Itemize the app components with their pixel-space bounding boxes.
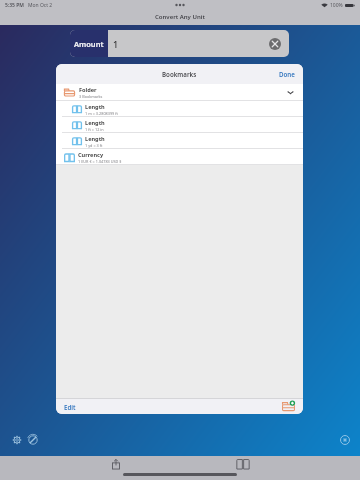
staticText: Length bbox=[85, 135, 105, 143]
staticText: 1 m = 3.2808399 ft bbox=[85, 111, 118, 116]
staticText: 3 Bookmarks bbox=[79, 94, 103, 99]
button[interactable]: Folder bbox=[56, 84, 303, 101]
button[interactable]: Length bbox=[56, 133, 303, 149]
staticText: Mon Oct 2 bbox=[28, 2, 53, 9]
staticText: 1 ft = 12 in bbox=[85, 127, 104, 132]
staticText: Edit bbox=[64, 403, 76, 411]
staticText: Length bbox=[85, 103, 105, 111]
staticText: 5:35 PM bbox=[5, 2, 24, 9]
staticText: Currency bbox=[78, 151, 104, 159]
button[interactable]: Currency bbox=[56, 149, 303, 165]
button[interactable]: Length bbox=[56, 117, 303, 133]
staticText: 100% bbox=[330, 2, 343, 9]
button[interactable]: Length bbox=[56, 101, 303, 117]
staticText: Done bbox=[279, 70, 295, 78]
button[interactable]: New folder bbox=[282, 400, 295, 413]
button[interactable]: Refresh rates bbox=[26, 433, 40, 447]
button[interactable]: Settings bbox=[10, 433, 24, 447]
staticText: Amount bbox=[74, 39, 104, 49]
button[interactable]: Clear amount bbox=[268, 37, 282, 51]
button[interactable]: Share bbox=[109, 457, 123, 471]
staticText: Convert Any Unit bbox=[155, 13, 205, 21]
staticText: 1 EUR € = 1.04783 USD $ bbox=[78, 159, 122, 164]
staticText: Folder bbox=[79, 86, 97, 94]
staticText: 1 yd = 3 ft bbox=[85, 143, 103, 148]
staticText: Bookmarks bbox=[162, 70, 197, 78]
staticText: 1 bbox=[113, 38, 119, 50]
button[interactable]: Done bbox=[271, 64, 303, 84]
button[interactable]: Info bbox=[338, 433, 352, 447]
button[interactable]: Edit bbox=[56, 399, 84, 414]
button[interactable]: Amount bbox=[70, 30, 289, 57]
button[interactable]: Bookmarks bbox=[236, 457, 250, 471]
staticText: Length bbox=[85, 119, 105, 127]
